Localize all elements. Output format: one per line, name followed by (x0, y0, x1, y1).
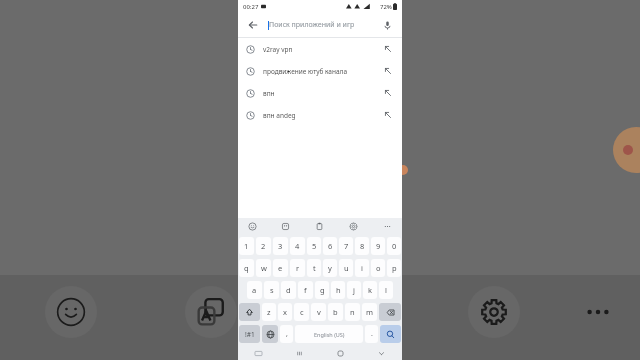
button[interactable]: 7 (339, 237, 353, 255)
staticText: 1 (244, 241, 249, 251)
staticText: 8 (360, 241, 365, 251)
button[interactable]: Shift (239, 303, 260, 321)
staticText: 00:27 (243, 3, 259, 11)
button[interactable]: b (328, 303, 343, 321)
button[interactable]: x (278, 303, 292, 321)
button[interactable]: 4 (290, 237, 305, 255)
button[interactable]: h (331, 281, 345, 299)
staticText: English (US) (314, 331, 345, 338)
staticText: y (328, 263, 332, 273)
staticText: 0 (392, 241, 397, 251)
button[interactable]: 9 (371, 237, 385, 255)
button[interactable]: продвижение ютуб канала (238, 60, 402, 82)
button[interactable]: 1 (239, 237, 254, 255)
button[interactable]: , (280, 325, 293, 343)
button[interactable]: Emoji (246, 220, 259, 233)
staticText: f (304, 285, 307, 295)
button[interactable]: k (363, 281, 377, 299)
staticText: 72% (380, 3, 392, 11)
button[interactable]: a (247, 281, 262, 299)
button[interactable]: j (347, 281, 361, 299)
staticText: w (261, 263, 267, 273)
button[interactable]: Clipboard (313, 220, 326, 233)
button[interactable]: d (281, 281, 296, 299)
button[interactable]: Hide keyboard (361, 346, 402, 360)
button[interactable]: f (298, 281, 313, 299)
button[interactable]: Recents (279, 346, 320, 360)
staticText: продвижение ютуб канала (263, 67, 348, 76)
button[interactable]: впн andeg (238, 104, 402, 126)
button[interactable]: Translate (185, 286, 237, 338)
button[interactable]: m (362, 303, 377, 321)
staticText: r (296, 263, 300, 273)
button[interactable]: p (387, 259, 401, 277)
button[interactable]: English (US) (295, 325, 363, 343)
button[interactable]: 5 (307, 237, 321, 255)
button[interactable]: w (256, 259, 271, 277)
button[interactable]: i (355, 259, 369, 277)
button[interactable]: z (262, 303, 276, 321)
button[interactable]: u (339, 259, 353, 277)
button[interactable]: n (345, 303, 360, 321)
button[interactable]: Back (244, 16, 262, 34)
button[interactable]: !#1 (239, 325, 260, 343)
staticText: 9 (376, 241, 381, 251)
staticText: a (252, 285, 257, 295)
button[interactable]: y (323, 259, 337, 277)
staticText: k (368, 285, 373, 295)
button[interactable]: Insert suggestion (382, 109, 394, 121)
button[interactable]: g (315, 281, 329, 299)
button[interactable]: r (290, 259, 305, 277)
button[interactable]: Поиск приложений и игр (268, 20, 378, 30)
button[interactable]: Keyboard switch (238, 346, 279, 360)
staticText: v2ray vpn (263, 45, 293, 54)
button[interactable]: 3 (273, 237, 288, 255)
button[interactable]: 8 (355, 237, 369, 255)
button[interactable]: Keyboard settings (347, 220, 360, 233)
button[interactable]: 2 (256, 237, 271, 255)
staticText: v (317, 307, 321, 317)
button[interactable]: Settings (468, 286, 520, 338)
button[interactable]: Insert suggestion (382, 87, 394, 99)
button[interactable]: c (294, 303, 309, 321)
button[interactable]: Stickers (279, 220, 292, 233)
button[interactable]: Home (320, 346, 361, 360)
button[interactable]: Search (380, 325, 401, 343)
staticText: s (270, 285, 274, 295)
button[interactable]: Emoji (45, 286, 97, 338)
button[interactable]: o (371, 259, 385, 277)
staticText: 7 (344, 241, 349, 251)
button[interactable]: q (239, 259, 254, 277)
button[interactable]: v (311, 303, 326, 321)
button[interactable]: Backspace (379, 303, 401, 321)
button[interactable]: s (264, 281, 279, 299)
staticText: m (366, 307, 374, 317)
staticText: z (267, 307, 271, 317)
staticText: j (353, 285, 355, 295)
staticText: h (336, 285, 341, 295)
staticText: 2 (261, 241, 266, 251)
button[interactable]: More (381, 220, 394, 233)
staticText: e (278, 263, 283, 273)
staticText: i (361, 263, 363, 273)
staticText: x (283, 307, 287, 317)
button[interactable]: Insert suggestion (382, 43, 394, 55)
button[interactable]: Change language (262, 325, 278, 343)
staticText: t (313, 263, 316, 273)
button[interactable]: Voice search (378, 16, 396, 34)
button[interactable]: Insert suggestion (382, 65, 394, 77)
button[interactable]: v2ray vpn (238, 38, 402, 60)
staticText: c (300, 307, 304, 317)
button[interactable]: 0 (387, 237, 401, 255)
button[interactable]: . (365, 325, 378, 343)
staticText: g (320, 285, 325, 295)
button[interactable]: t (307, 259, 321, 277)
staticText: p (392, 263, 397, 273)
button[interactable]: More options (572, 286, 624, 338)
button[interactable]: l (379, 281, 393, 299)
staticText: Поиск приложений и игр (269, 20, 355, 30)
staticText: l (385, 285, 387, 295)
button[interactable]: e (273, 259, 288, 277)
button[interactable]: 6 (323, 237, 337, 255)
button[interactable]: впн (238, 82, 402, 104)
